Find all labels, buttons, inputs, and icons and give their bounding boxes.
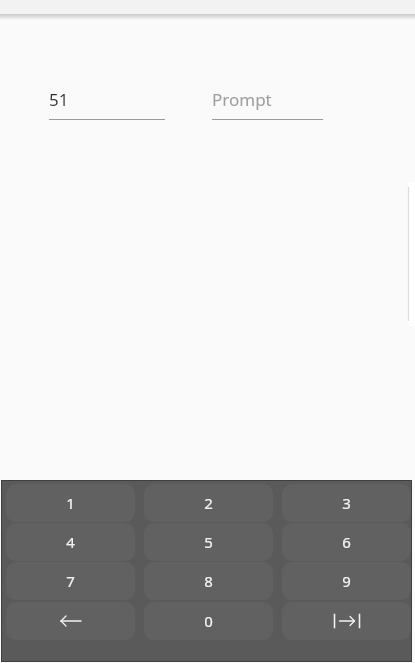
button[interactable]: 4 [6,523,135,561]
button[interactable]: Backspace [6,602,135,640]
button[interactable]: Prompt [212,88,323,120]
button[interactable]: 7 [6,562,135,600]
staticText: 7 [66,571,75,591]
staticText: 2 [204,493,213,513]
button[interactable]: 51 [49,88,165,120]
staticText: 0 [204,611,213,631]
staticText: 3 [342,493,351,513]
staticText: 4 [66,532,75,552]
button[interactable]: 1 [6,484,135,522]
staticText: 9 [342,571,351,591]
staticText: 6 [342,532,351,552]
staticText: Prompt [212,88,272,111]
staticText: 8 [204,571,213,591]
button[interactable]: 5 [144,523,273,561]
button[interactable]: 3 [282,484,411,522]
staticText: 5 [204,532,213,552]
button[interactable]: Next field [282,602,411,640]
staticText: 51 [49,88,69,111]
button[interactable]: 9 [282,562,411,600]
button[interactable]: 8 [144,562,273,600]
button[interactable]: 6 [282,523,411,561]
button[interactable]: 2 [144,484,273,522]
staticText: 1 [66,493,75,513]
button[interactable]: 0 [144,602,273,640]
